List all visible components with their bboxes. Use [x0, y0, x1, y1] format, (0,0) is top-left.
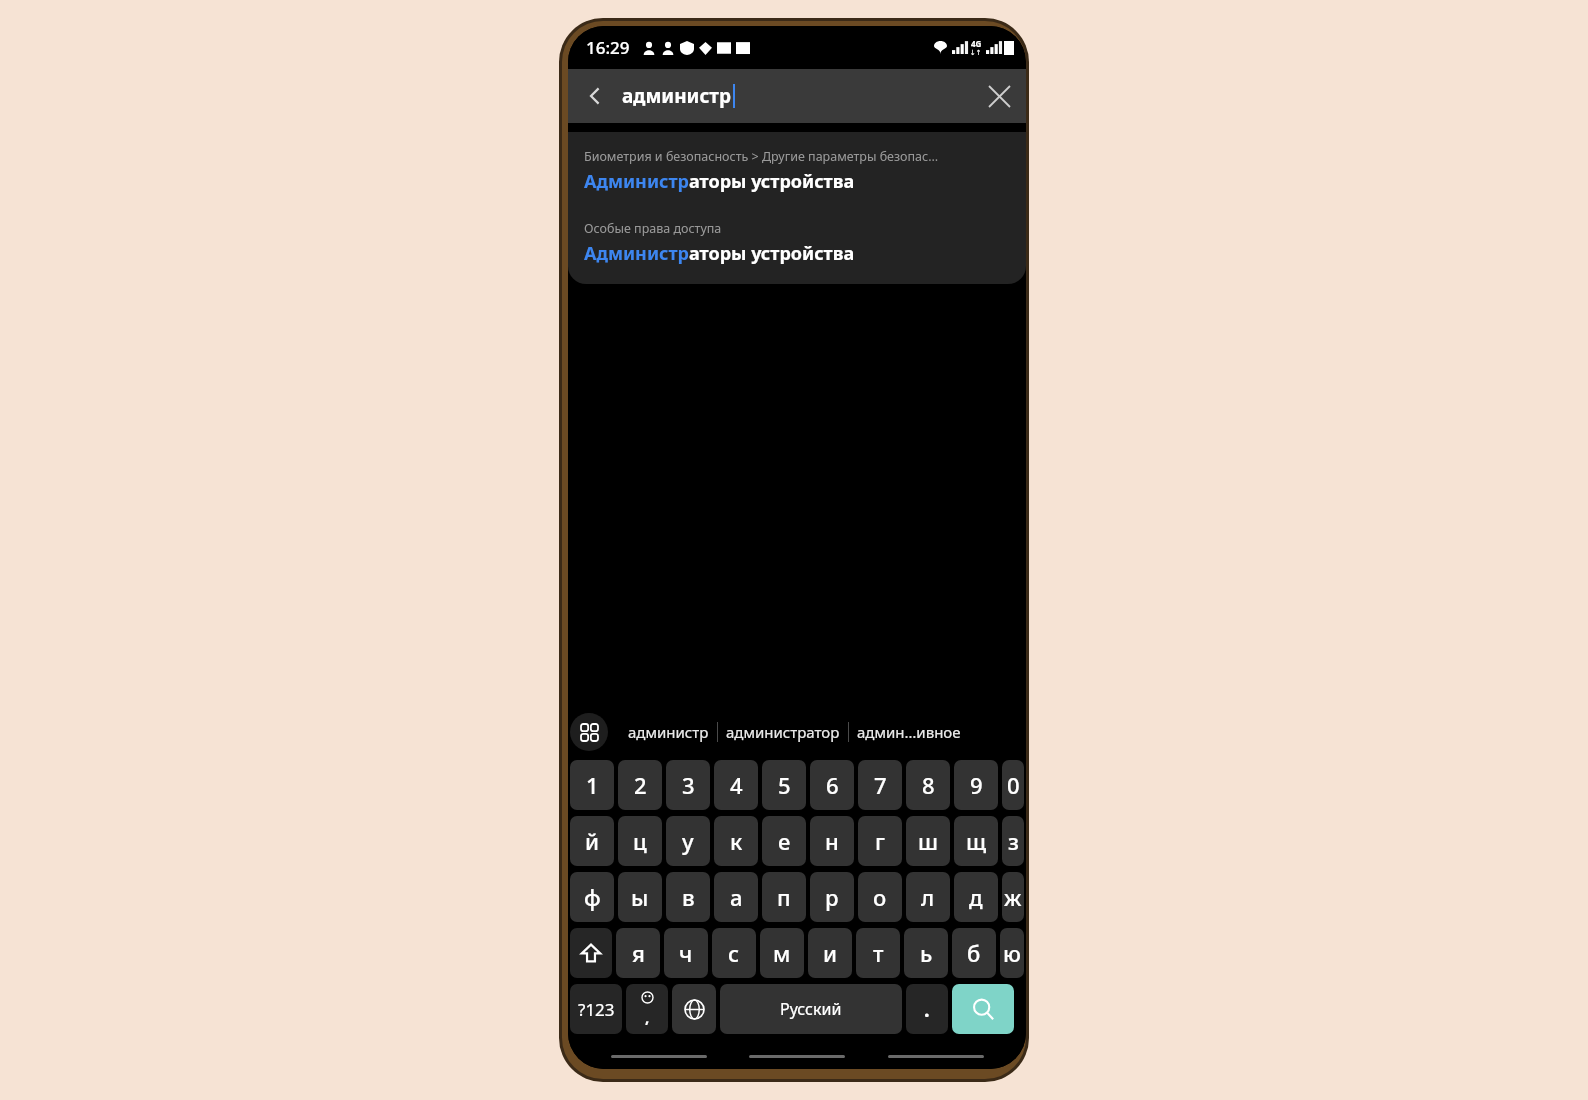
- staticText: ↓↑: [970, 49, 982, 57]
- button[interactable]: ч: [664, 928, 708, 978]
- staticText: н: [825, 826, 839, 856]
- button[interactable]: ц: [618, 816, 662, 866]
- button[interactable]: г: [858, 816, 902, 866]
- staticText: администратор: [726, 722, 840, 742]
- staticText: Особые права доступа: [584, 220, 722, 237]
- staticText: 2: [634, 770, 647, 800]
- staticText: к: [730, 826, 743, 856]
- button[interactable]: у: [666, 816, 710, 866]
- button[interactable]: 2: [618, 760, 662, 810]
- staticText: 0: [1007, 770, 1020, 800]
- staticText: л: [921, 882, 935, 912]
- button[interactable]: Keyboard menu: [570, 713, 608, 751]
- button[interactable]: Search: [952, 984, 1014, 1034]
- button[interactable]: н: [810, 816, 854, 866]
- button[interactable]: я: [616, 928, 660, 978]
- staticText: о: [873, 882, 887, 912]
- button[interactable]: ?123: [570, 984, 622, 1034]
- button[interactable]: Change language: [672, 984, 716, 1034]
- button[interactable]: ф: [570, 872, 614, 922]
- button[interactable]: 4: [714, 760, 758, 810]
- button[interactable]: 6: [810, 760, 854, 810]
- button[interactable]: Особые права доступа: [584, 220, 1010, 266]
- button[interactable]: Back: [568, 69, 622, 123]
- button[interactable]: и: [808, 928, 852, 978]
- staticText: ц: [633, 826, 647, 856]
- staticText: Администраторы устройства: [584, 169, 855, 194]
- staticText: ж: [1004, 882, 1022, 912]
- staticText: 3: [682, 770, 695, 800]
- button[interactable]: Русский: [720, 984, 902, 1034]
- button[interactable]: 3: [666, 760, 710, 810]
- staticText: с: [728, 938, 740, 968]
- staticText: б: [967, 938, 981, 968]
- button[interactable]: в: [666, 872, 710, 922]
- button[interactable]: Emoji and comma: [626, 984, 668, 1034]
- staticText: д: [969, 882, 983, 912]
- staticText: а: [730, 882, 743, 912]
- staticText: админ…ивное: [857, 722, 961, 742]
- staticText: й: [585, 826, 600, 856]
- button[interactable]: а: [714, 872, 758, 922]
- button[interactable]: Navigation: [888, 1055, 984, 1058]
- button[interactable]: с: [712, 928, 756, 978]
- button[interactable]: 7: [858, 760, 902, 810]
- button[interactable]: д: [954, 872, 998, 922]
- button[interactable]: й: [570, 816, 614, 866]
- staticText: р: [825, 882, 839, 912]
- staticText: 9: [970, 770, 983, 800]
- staticText: я: [632, 938, 645, 968]
- button[interactable]: 8: [906, 760, 950, 810]
- button[interactable]: т: [856, 928, 900, 978]
- button[interactable]: ю: [1000, 928, 1024, 978]
- button[interactable]: 5: [762, 760, 806, 810]
- button[interactable]: Биометрия и безопасность > Другие параме…: [584, 148, 1010, 194]
- staticText: 5: [778, 770, 791, 800]
- button[interactable]: Shift: [570, 928, 612, 978]
- button[interactable]: м: [760, 928, 804, 978]
- staticText: .: [924, 996, 930, 1023]
- staticText: ю: [1003, 938, 1021, 968]
- button[interactable]: е: [762, 816, 806, 866]
- button[interactable]: р: [810, 872, 854, 922]
- button[interactable]: б: [952, 928, 996, 978]
- button[interactable]: 9: [954, 760, 998, 810]
- staticText: т: [873, 938, 884, 968]
- button[interactable]: о: [858, 872, 902, 922]
- staticText: ч: [679, 938, 693, 968]
- button[interactable]: л: [906, 872, 950, 922]
- button[interactable]: администр: [620, 716, 717, 748]
- staticText: ,: [645, 1007, 650, 1027]
- button[interactable]: .: [906, 984, 948, 1034]
- staticText: 4: [730, 770, 743, 800]
- button[interactable]: к: [714, 816, 758, 866]
- staticText: з: [1008, 826, 1019, 856]
- button[interactable]: администратор: [718, 716, 848, 748]
- button[interactable]: ж: [1002, 872, 1024, 922]
- button[interactable]: п: [762, 872, 806, 922]
- button[interactable]: админ…ивное: [849, 716, 969, 748]
- button[interactable]: ь: [904, 928, 948, 978]
- button[interactable]: Clear: [972, 69, 1026, 123]
- staticText: администр: [628, 722, 709, 742]
- staticText: г: [875, 826, 885, 856]
- button[interactable]: 0: [1002, 760, 1024, 810]
- button[interactable]: 1: [570, 760, 614, 810]
- staticText: администр: [622, 83, 732, 109]
- button[interactable]: Navigation: [611, 1055, 707, 1058]
- button[interactable]: ы: [618, 872, 662, 922]
- button[interactable]: Navigation: [749, 1055, 845, 1058]
- staticText: п: [777, 882, 791, 912]
- staticText: е: [778, 826, 791, 856]
- button[interactable]: ш: [906, 816, 950, 866]
- staticText: 8: [922, 770, 935, 800]
- staticText: ?123: [578, 998, 615, 1021]
- staticText: 4G: [971, 38, 982, 49]
- staticText: ы: [631, 882, 649, 912]
- staticText: у: [682, 826, 694, 856]
- staticText: 1: [586, 770, 599, 800]
- button[interactable]: щ: [954, 816, 998, 866]
- staticText: Биометрия и безопасность > Другие параме…: [584, 148, 939, 165]
- button[interactable]: з: [1002, 816, 1024, 866]
- staticText: щ: [966, 826, 987, 856]
